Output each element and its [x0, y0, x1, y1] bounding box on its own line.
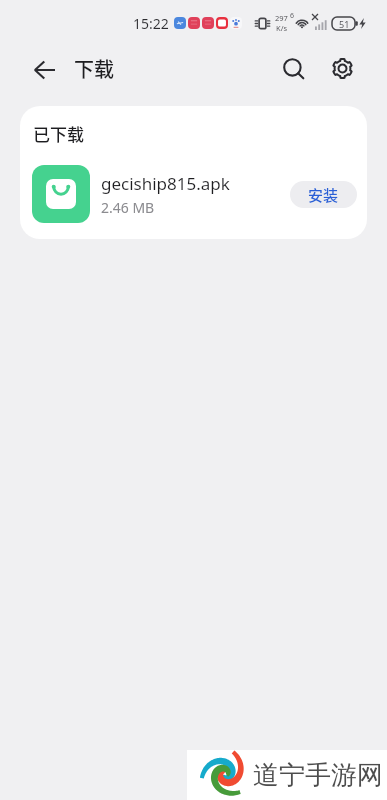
staticText: 安装 [308, 184, 339, 206]
staticText: geciship815.apk [101, 172, 230, 195]
staticText: 道宁手游网 [253, 759, 383, 792]
button[interactable]: geciship815.apk [20, 165, 367, 223]
staticText: 15:22 [133, 14, 169, 33]
staticText: 2.46 MB [101, 198, 155, 217]
button[interactable]: Search [277, 53, 311, 87]
staticText: 6 [290, 11, 295, 21]
button[interactable]: Settings [325, 53, 359, 87]
staticText: 下载 [74, 54, 114, 83]
button[interactable]: 安装 [290, 181, 357, 208]
staticText: 已下载 [33, 121, 84, 146]
button[interactable]: Back [27, 53, 61, 87]
staticText: 51 [339, 18, 350, 30]
staticText: 297 [275, 13, 288, 23]
staticText: K/s [276, 23, 288, 33]
